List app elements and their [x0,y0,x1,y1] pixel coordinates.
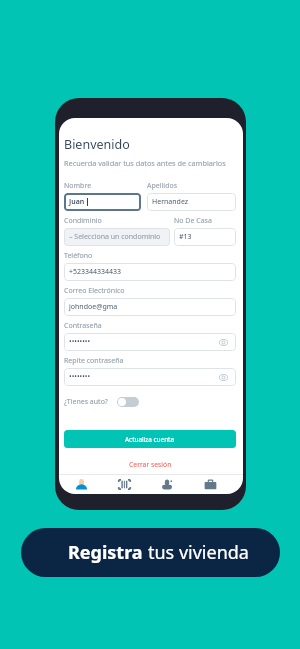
button[interactable]: +523344334433 [64,263,236,281]
button[interactable]: #13 [174,228,236,246]
button[interactable]: •••••••• [64,368,236,386]
button[interactable]: •••••••• [64,333,236,351]
staticText: – Selecciona un condominio – [69,232,165,242]
button[interactable]: Cerrar sesión [64,460,236,469]
staticText: Registra [68,540,148,565]
button[interactable]: Perfil [72,475,91,494]
staticText: Contraseña [64,321,102,331]
button[interactable]: johndoe@gma [64,298,236,316]
button[interactable]: – Selecciona un condominio – [64,228,170,246]
staticText: •••••••• [69,372,91,382]
staticText: Cerrar sesión [129,460,172,469]
staticText: Teléfono [64,251,93,261]
button[interactable]: Actualiza cuenta [64,430,236,448]
button[interactable]: Registra [21,528,280,577]
staticText: Nombre [64,181,92,191]
staticText: Juan [69,197,85,207]
staticText: +523344334433 [69,267,122,277]
staticText: Recuerda validar tus datos antes de camb… [64,158,226,168]
staticText: Correo Electrónico [64,286,125,296]
staticText: Apellidos [147,181,178,191]
staticText: Condiminio [64,216,102,226]
staticText: Bienvenido [64,136,130,153]
staticText: Repite contraseña [64,356,124,366]
button[interactable]: Escanear [115,475,134,494]
staticText: Actualiza cuenta [125,435,175,444]
button[interactable]: Tienes auto [117,397,139,407]
button[interactable]: Usuarios [158,475,177,494]
button[interactable]: Juan [64,193,141,211]
staticText: •••••••• [69,337,91,347]
button[interactable]: Trabajo [201,475,220,494]
staticText: ¿Tienes auto? [64,397,108,407]
staticText: tus vivienda [148,540,249,565]
staticText: Hernandez [152,197,189,207]
staticText: johndoe@gma [69,302,118,312]
button[interactable]: Hernandez [147,193,236,211]
staticText: #13 [179,232,192,242]
staticText: No De Casa [174,216,212,226]
